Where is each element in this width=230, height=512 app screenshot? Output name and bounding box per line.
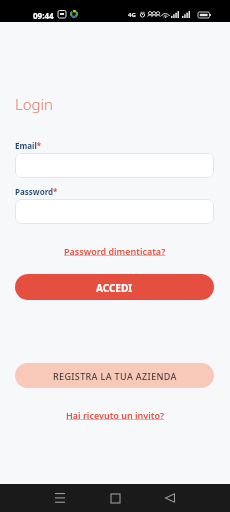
staticText: Password dimenticata? [64,245,166,257]
button[interactable] [15,153,214,178]
staticText: 4G [128,11,136,19]
staticText: Email* [15,140,42,151]
button[interactable]: Recents [49,487,71,509]
button[interactable]: Home [104,487,126,509]
button[interactable] [15,199,214,224]
button[interactable]: Hai ricevuto un invito? [60,407,171,423]
button[interactable]: Password dimenticata? [58,243,172,259]
staticText: REGISTRA LA TUA AZIENDA [53,370,177,382]
staticText: Hai ricevuto un invito? [66,409,165,421]
button[interactable]: REGISTRA LA TUA AZIENDA [15,363,214,388]
staticText: 09:44 [33,10,54,21]
button[interactable]: Back [159,487,181,509]
staticText: Password* [15,186,58,197]
button[interactable]: ACCEDI [15,274,214,300]
staticText: Login [15,94,53,114]
staticText: ACCEDI [96,281,133,295]
